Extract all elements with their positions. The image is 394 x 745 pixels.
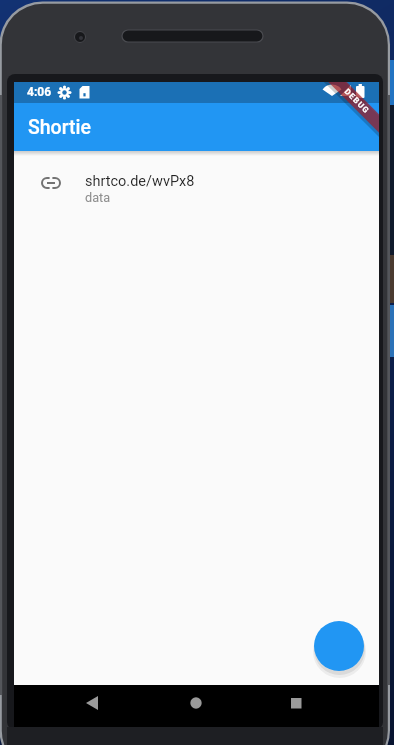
staticText: shrtco.de/wvPx8 bbox=[85, 173, 195, 190]
staticText: DEBUG bbox=[342, 87, 371, 116]
staticText: 4:06 bbox=[27, 85, 52, 99]
button[interactable] bbox=[68, 685, 116, 721]
button[interactable] bbox=[172, 685, 220, 721]
button[interactable] bbox=[314, 621, 364, 671]
staticText: Shortie bbox=[28, 116, 91, 139]
button[interactable]: shrtco.de/wvPx8 bbox=[14, 151, 379, 215]
staticText: data bbox=[85, 190, 111, 205]
button[interactable] bbox=[272, 685, 320, 721]
